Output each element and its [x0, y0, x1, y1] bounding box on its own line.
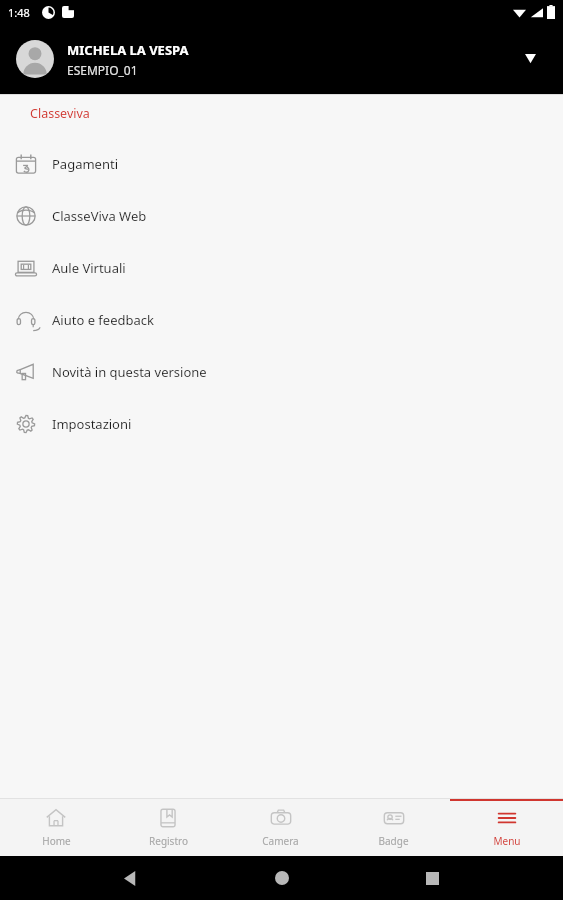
- staticText: Badge: [378, 834, 409, 848]
- staticText: Registro: [149, 834, 188, 848]
- staticText: Novità in questa versione: [52, 363, 207, 381]
- button[interactable]: Aule Virtuali: [0, 242, 563, 294]
- button[interactable]: Expand account: [513, 42, 547, 76]
- button[interactable]: ClasseViva Web: [0, 190, 563, 242]
- staticText: MICHELA LA VESPA: [67, 41, 189, 59]
- staticText: Aiuto e feedback: [52, 311, 154, 329]
- button[interactable]: Back: [111, 858, 151, 898]
- button[interactable]: Home: [262, 858, 302, 898]
- button[interactable]: Recents: [412, 858, 452, 898]
- staticText: Menu: [493, 834, 521, 848]
- button[interactable]: MICHELA LA VESPA: [0, 24, 563, 94]
- staticText: 1:48: [8, 5, 30, 20]
- staticText: ESEMPIO_01: [67, 62, 138, 78]
- staticText: Impostazioni: [52, 415, 132, 433]
- staticText: Aule Virtuali: [52, 259, 126, 277]
- button[interactable]: Registro: [112, 799, 224, 856]
- button[interactable]: Home: [0, 799, 112, 856]
- button[interactable]: Aiuto e feedback: [0, 294, 563, 346]
- staticText: Home: [42, 834, 71, 848]
- button[interactable]: Badge: [337, 799, 450, 856]
- staticText: Camera: [262, 834, 299, 848]
- staticText: Classeviva: [30, 105, 90, 122]
- button[interactable]: Impostazioni: [0, 398, 563, 450]
- button[interactable]: Camera: [224, 799, 337, 856]
- button[interactable]: Pagamenti: [0, 138, 563, 190]
- staticText: ClasseViva Web: [52, 207, 147, 225]
- button[interactable]: Novità in questa versione: [0, 346, 563, 398]
- button[interactable]: Menu: [450, 799, 563, 856]
- staticText: Pagamenti: [52, 155, 119, 173]
